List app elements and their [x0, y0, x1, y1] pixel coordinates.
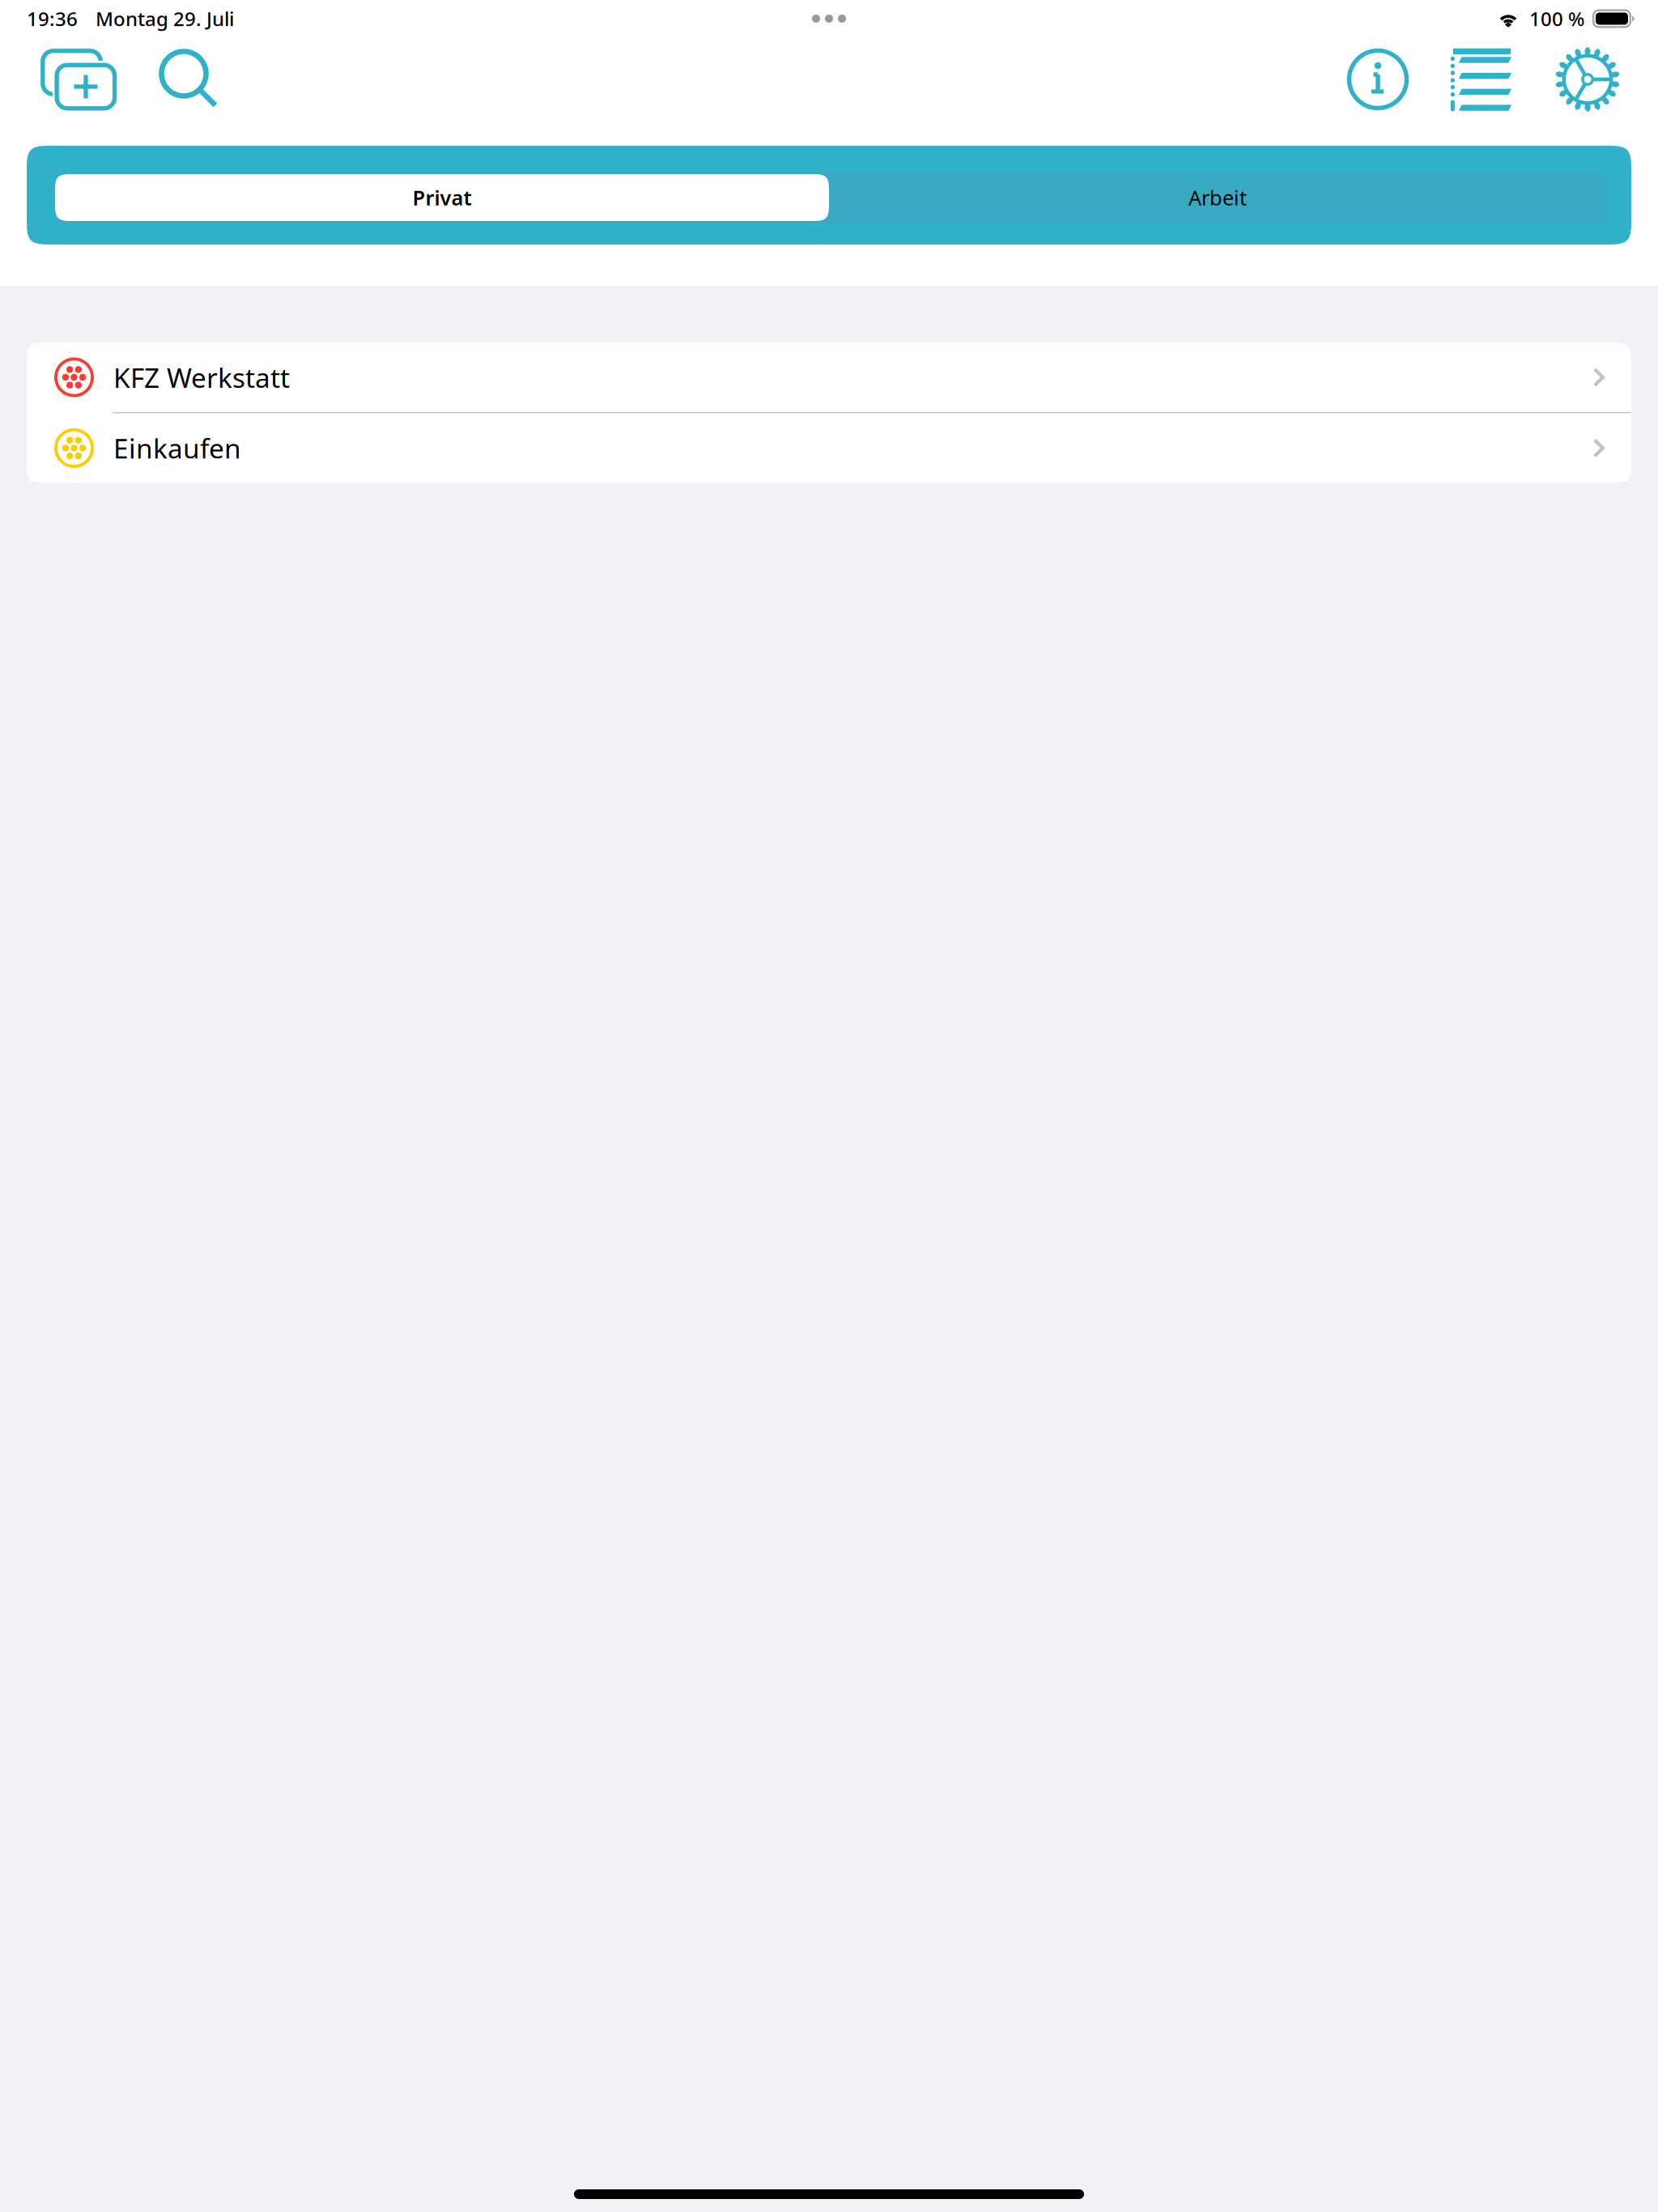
button[interactable]: Arbeit — [829, 146, 1631, 245]
button[interactable]: Information — [1333, 40, 1422, 119]
staticText: Einkaufen — [113, 430, 241, 466]
staticText: Arbeit — [1188, 184, 1247, 211]
button[interactable]: Einkaufen — [27, 413, 1631, 483]
button[interactable]: KFZ Werkstatt — [27, 342, 1631, 412]
button[interactable]: Einstellungen — [1541, 38, 1634, 121]
button[interactable]: Listen verwalten — [1437, 39, 1527, 120]
staticText: KFZ Werkstatt — [113, 359, 290, 395]
button[interactable]: Privat — [27, 146, 829, 245]
staticText: 100 % — [1529, 6, 1584, 32]
button[interactable]: Suchen — [146, 40, 232, 118]
staticText: Privat — [412, 184, 472, 211]
staticText: Montag 29. Juli — [96, 6, 234, 32]
staticText: 19:36 — [27, 6, 78, 32]
button[interactable]: Neue Liste — [28, 40, 130, 118]
